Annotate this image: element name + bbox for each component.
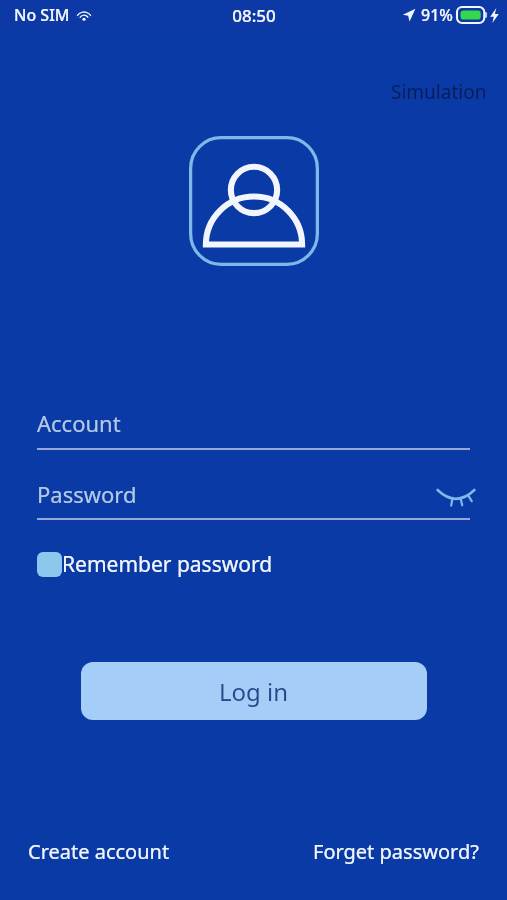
staticText: No SIM — [14, 4, 70, 26]
staticText: Forget password? — [313, 838, 479, 865]
staticText: 08:50 — [232, 4, 276, 27]
button[interactable]: Account — [37, 398, 470, 448]
button[interactable]: Forget password? — [313, 838, 479, 865]
button[interactable]: Remember password — [37, 550, 273, 579]
staticText: Create account — [28, 838, 170, 865]
button[interactable]: Create account — [28, 838, 170, 865]
button[interactable]: Show password — [433, 474, 479, 514]
staticText: Simulation — [391, 79, 487, 105]
staticText: 91% — [421, 4, 453, 26]
button[interactable]: Password — [37, 470, 470, 518]
staticText: Log in — [219, 675, 289, 708]
staticText: Account — [37, 408, 121, 438]
staticText: Password — [37, 479, 137, 509]
staticText: Remember password — [62, 550, 273, 579]
button[interactable]: Log in — [81, 662, 427, 720]
